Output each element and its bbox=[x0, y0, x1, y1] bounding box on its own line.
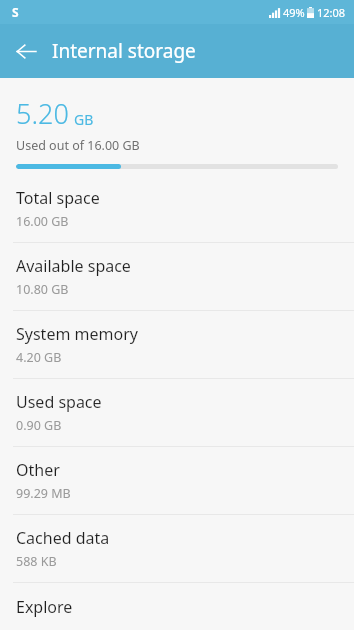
staticText: Used out of 16.00 GB bbox=[16, 137, 140, 154]
staticText: S bbox=[12, 4, 19, 20]
staticText: 16.00 GB bbox=[16, 213, 69, 230]
staticText: 0.90 GB bbox=[16, 417, 62, 434]
staticText: Cached data bbox=[16, 527, 110, 549]
button[interactable]: Other bbox=[0, 447, 354, 514]
staticText: System memory bbox=[16, 323, 138, 345]
staticText: 588 KB bbox=[16, 553, 57, 570]
button[interactable]: Explore bbox=[0, 583, 354, 630]
button[interactable]: System memory bbox=[0, 311, 354, 378]
staticText: 4.20 GB bbox=[16, 349, 62, 366]
staticText: Other bbox=[16, 459, 60, 481]
staticText: 5.20 bbox=[16, 95, 69, 132]
staticText: 99.29 MB bbox=[16, 485, 71, 502]
button[interactable]: Back bbox=[6, 31, 46, 71]
staticText: Used space bbox=[16, 391, 102, 413]
button[interactable]: Cached data bbox=[0, 515, 354, 582]
staticText: 10.80 GB bbox=[16, 281, 69, 298]
staticText: Total space bbox=[16, 187, 100, 209]
staticText: 49% bbox=[283, 5, 305, 20]
staticText: 12:08 bbox=[317, 5, 346, 20]
button[interactable]: Used space bbox=[0, 379, 354, 446]
button[interactable]: Total space bbox=[0, 175, 354, 242]
staticText: GB bbox=[74, 110, 94, 129]
staticText: Explore bbox=[16, 596, 73, 618]
button[interactable]: Available space bbox=[0, 243, 354, 310]
staticText: Available space bbox=[16, 255, 131, 277]
staticText: Internal storage bbox=[52, 38, 196, 64]
